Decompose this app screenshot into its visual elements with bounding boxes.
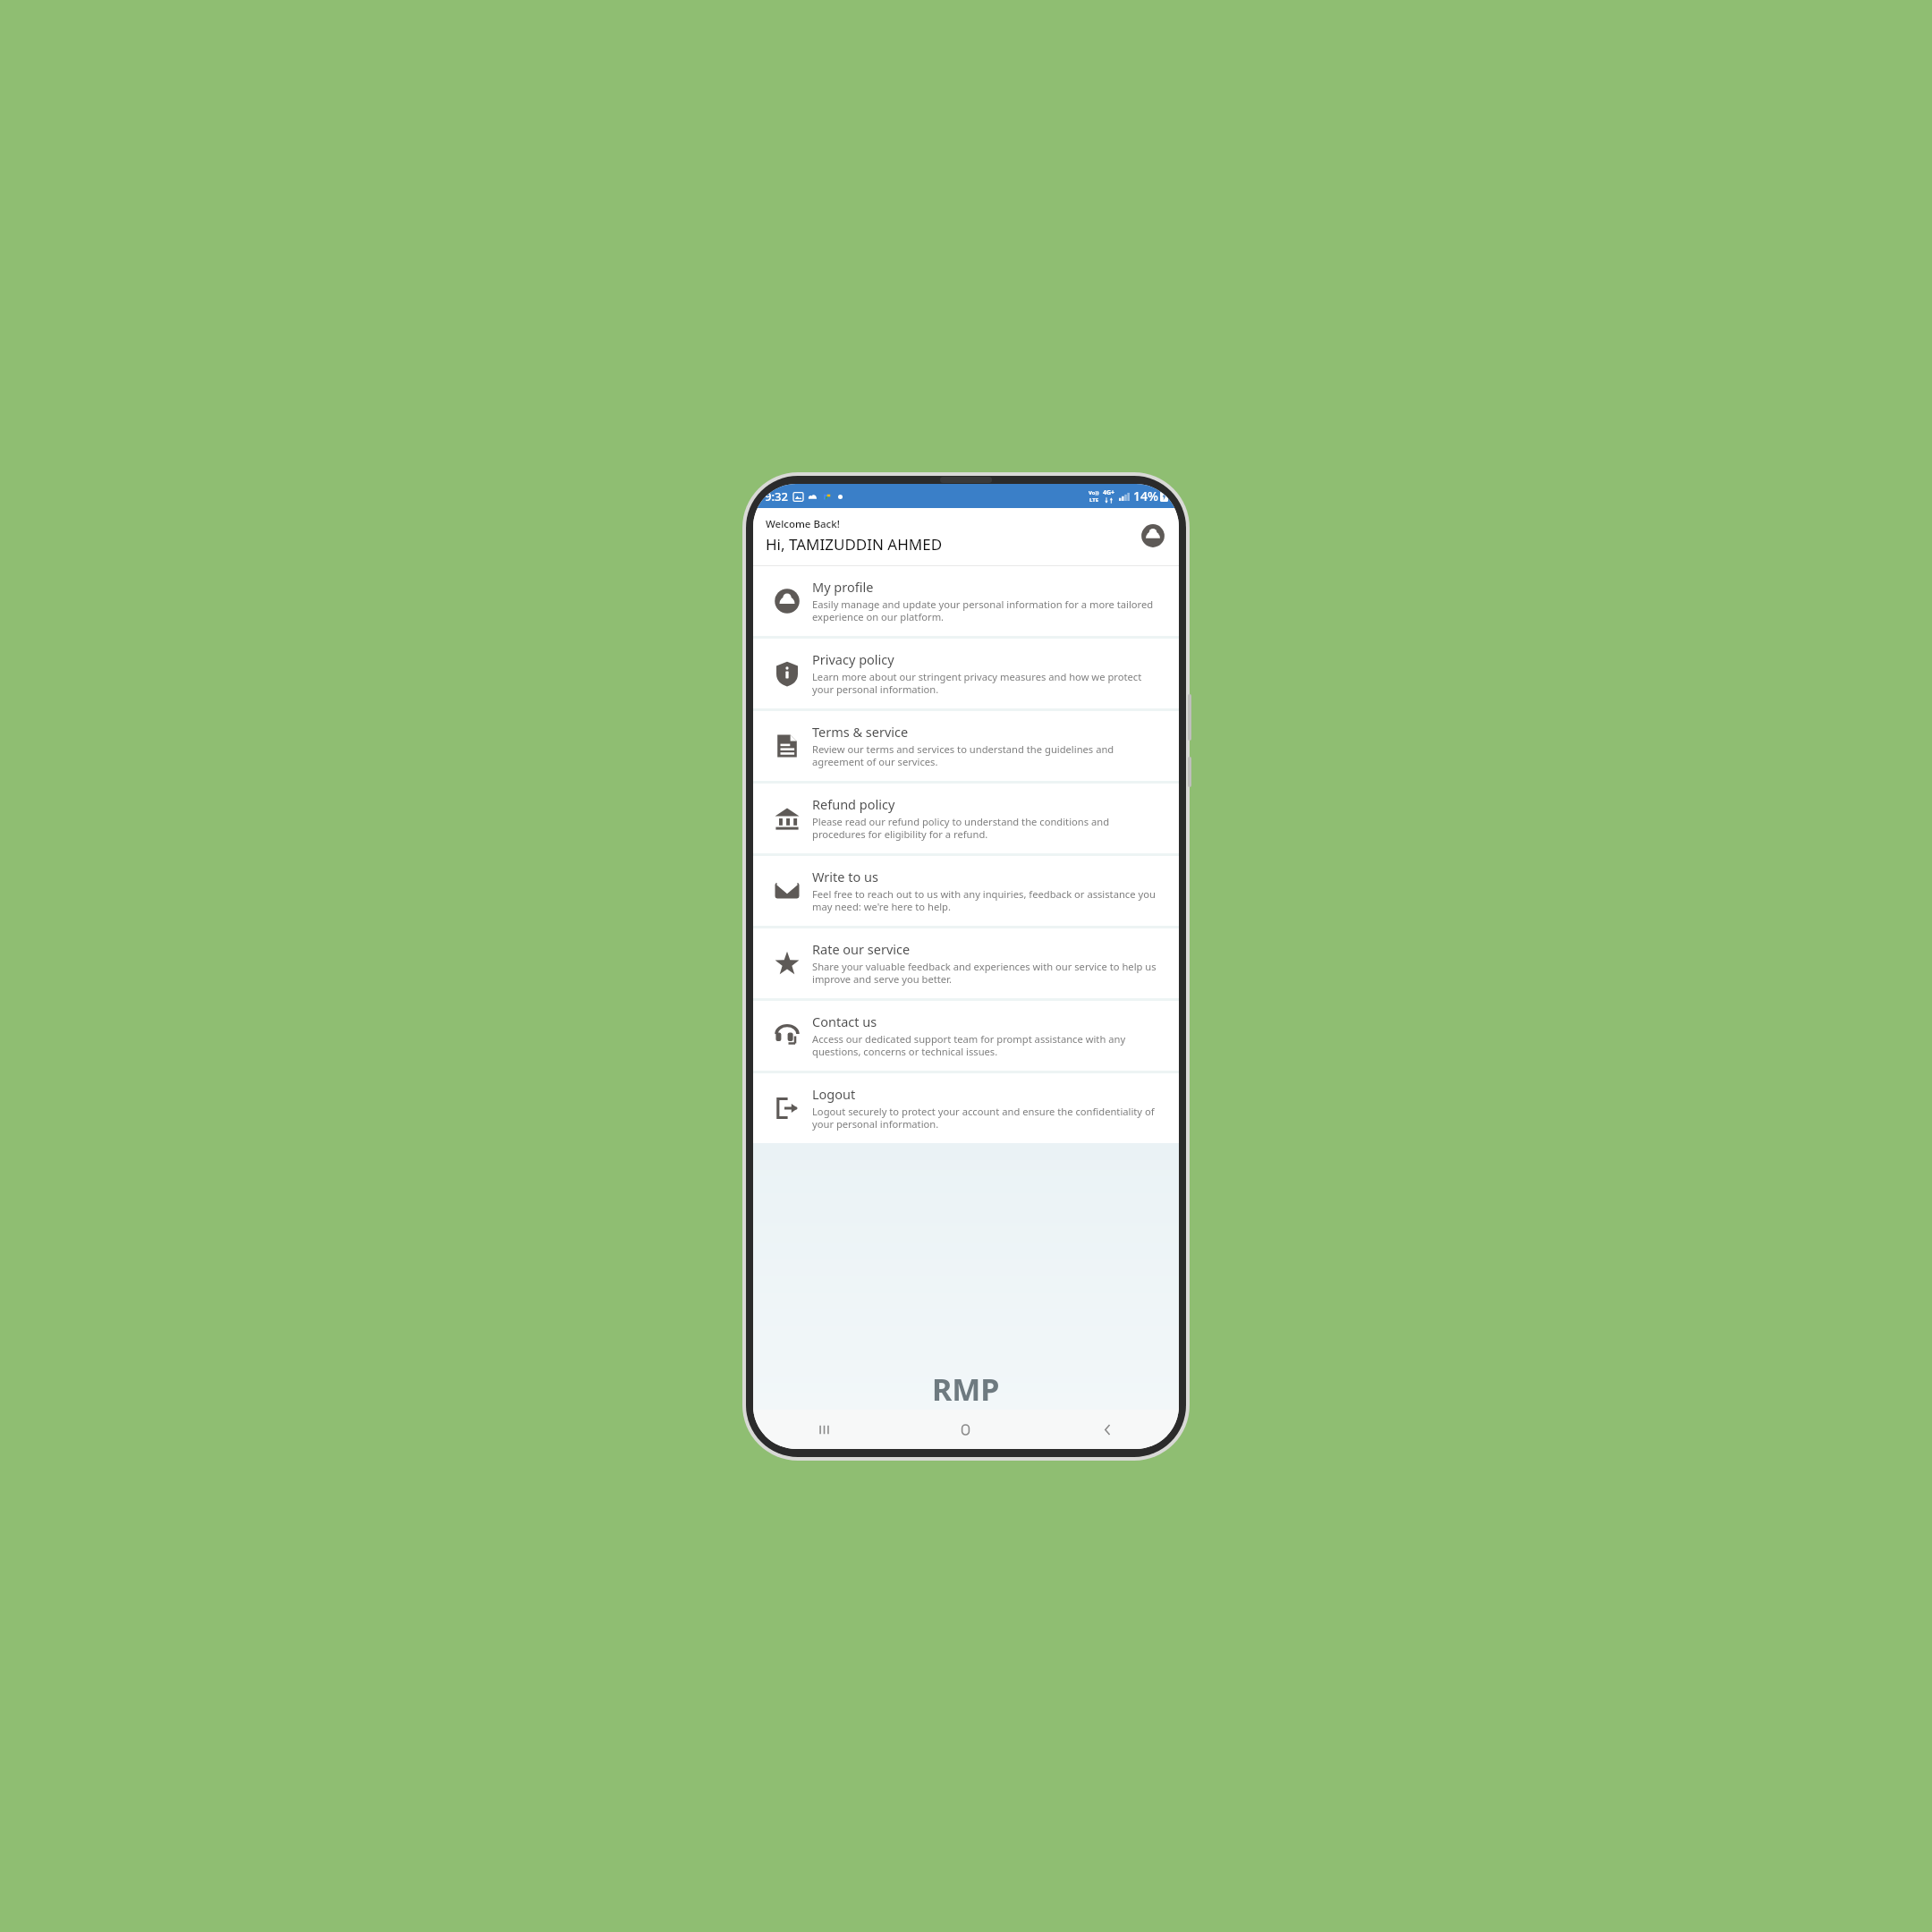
button[interactable]: My profile <box>753 566 1179 636</box>
staticText: Rate our service <box>812 940 911 958</box>
button[interactable]: Rate our service <box>753 928 1179 998</box>
staticText: Share your valuable feedback and experie… <box>812 960 1165 987</box>
staticText: Please read our refund policy to underst… <box>812 815 1165 842</box>
button[interactable]: Write to us <box>753 856 1179 926</box>
staticText: Write to us <box>812 868 878 885</box>
staticText: Easily manage and update your personal i… <box>812 597 1165 624</box>
staticText: Logout securely to protect your account … <box>812 1105 1165 1131</box>
staticText: Refund policy <box>812 795 895 813</box>
button[interactable]: Back <box>1037 1410 1179 1449</box>
button[interactable]: Contact us <box>753 1001 1179 1071</box>
staticText: Vo)) <box>1089 489 1099 496</box>
staticText: Review our terms and services to underst… <box>812 742 1165 769</box>
staticText: Learn more about our stringent privacy m… <box>812 670 1165 697</box>
staticText: Feel free to reach out to us with any in… <box>812 887 1165 914</box>
staticText: 14% <box>1133 487 1158 504</box>
staticText: My profile <box>812 578 874 596</box>
staticText: Contact us <box>812 1013 877 1030</box>
staticText: Access our dedicated support team for pr… <box>812 1032 1165 1059</box>
staticText: 4G+ <box>1103 488 1115 497</box>
staticText: Hi, TAMIZUDDIN AHMED <box>766 534 943 555</box>
button[interactable]: Home <box>894 1410 1037 1449</box>
button[interactable]: Privacy policy <box>753 639 1179 708</box>
button[interactable]: Profile <box>1140 522 1166 549</box>
staticText: Logout <box>812 1085 856 1103</box>
button[interactable]: Refund policy <box>753 784 1179 853</box>
staticText: 9:32 <box>765 488 788 504</box>
staticText: Welcome Back! <box>766 517 840 531</box>
staticText: Terms & service <box>812 723 909 741</box>
staticText: LTE <box>1089 496 1099 504</box>
button[interactable]: Terms & service <box>753 711 1179 781</box>
staticText: RMP <box>932 1368 1000 1410</box>
button[interactable]: Logout <box>753 1073 1179 1143</box>
staticText: Privacy policy <box>812 650 894 668</box>
button[interactable]: Recents <box>753 1410 894 1449</box>
